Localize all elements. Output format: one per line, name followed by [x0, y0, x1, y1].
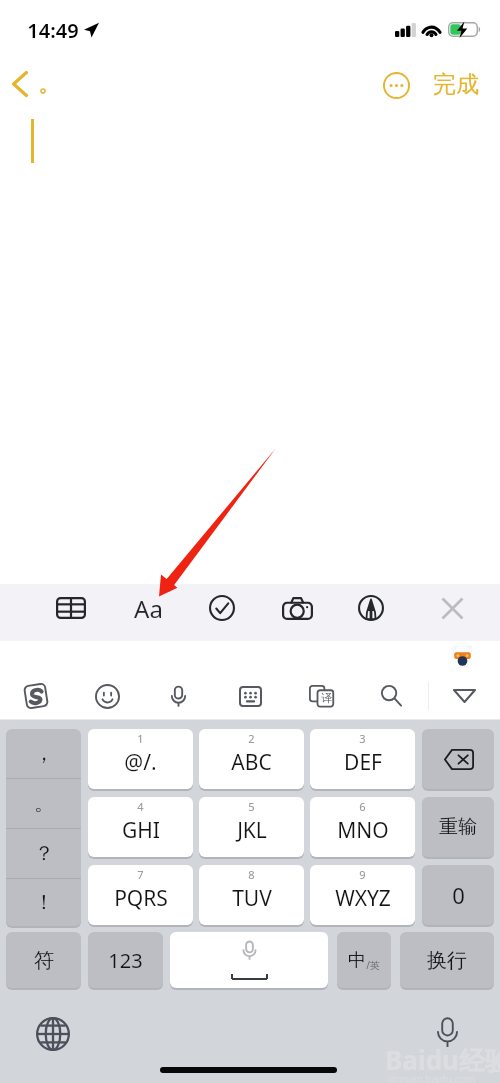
staticText: /英 [366, 958, 380, 972]
button[interactable]: Search [369, 674, 413, 718]
button[interactable]: Keyboard layout [228, 674, 272, 718]
staticText: ！ [34, 890, 54, 915]
button[interactable]: 换行 [400, 932, 494, 988]
button[interactable]: @/. [88, 729, 193, 789]
button[interactable]: ABC [199, 729, 304, 789]
button[interactable]: ， [6, 729, 81, 778]
staticText: Aa [134, 592, 163, 625]
staticText: 1 [137, 731, 144, 746]
staticText: 2 [248, 731, 255, 746]
button[interactable]: Close [428, 584, 476, 632]
button[interactable]: Emoji [85, 674, 129, 718]
staticText: PQRS [114, 884, 168, 913]
button[interactable]: 。 [6, 779, 81, 828]
staticText: @/. [124, 748, 157, 777]
button[interactable]: Camera [273, 584, 321, 632]
staticText: 8 [248, 867, 255, 882]
button[interactable]: Text format [124, 584, 172, 632]
staticText: ， [34, 741, 54, 766]
staticText: 。 [34, 791, 54, 816]
staticText: DEF [344, 748, 382, 777]
button[interactable]: DEF [310, 729, 415, 789]
button[interactable]: MNO [310, 797, 415, 857]
staticText: 译 [321, 691, 332, 705]
staticText: 完成 [433, 70, 479, 99]
staticText: 14:49 [27, 17, 79, 44]
staticText: ？ [34, 841, 54, 866]
button[interactable]: WXYZ [310, 865, 415, 925]
staticText: 符 [34, 948, 54, 973]
button[interactable]: 符 [6, 932, 81, 988]
staticText: 3 [359, 731, 366, 746]
button[interactable]: Voice input [425, 1010, 469, 1054]
staticText: 7 [137, 867, 144, 882]
button[interactable]: Table [47, 584, 95, 632]
button[interactable]: 完成 [427, 65, 485, 103]
button[interactable]: Chinese English toggle [337, 932, 391, 988]
button[interactable]: Markup [347, 584, 395, 632]
staticText: 4 [137, 799, 144, 814]
button[interactable]: ？ [6, 829, 81, 878]
staticText: GHI [122, 816, 160, 845]
staticText: TUV [232, 884, 272, 913]
staticText: WXYZ [335, 884, 391, 913]
button[interactable]: JKL [199, 797, 304, 857]
button[interactable]: ！ [6, 879, 81, 926]
button[interactable]: 123 [88, 932, 163, 988]
button[interactable]: Checklist [198, 584, 246, 632]
staticText: Baidu经验 [385, 1042, 500, 1078]
button[interactable]: Change language [31, 1012, 75, 1056]
button[interactable]: GHI [88, 797, 193, 857]
button[interactable]: TUV [199, 865, 304, 925]
staticText: 换行 [427, 948, 467, 973]
button[interactable]: Voice [156, 674, 200, 718]
button[interactable]: Back [6, 65, 54, 103]
button[interactable]: Translate [299, 674, 343, 718]
button[interactable]: More options [376, 65, 416, 105]
staticText: 5 [248, 799, 255, 814]
staticText: 9 [359, 867, 366, 882]
staticText: 重输 [439, 815, 477, 839]
button[interactable]: 0 [422, 865, 494, 925]
button[interactable]: 重输 [422, 797, 494, 857]
staticText: 123 [108, 947, 143, 974]
staticText: MNO [337, 816, 389, 845]
staticText: 0 [452, 880, 465, 910]
button[interactable]: Delete [422, 729, 494, 789]
staticText: ABC [231, 748, 272, 777]
button[interactable]: Sogou [14, 674, 58, 718]
staticText: 中 [348, 949, 366, 972]
staticText: 6 [359, 799, 366, 814]
staticText: JKL [237, 816, 267, 845]
button[interactable]: Space [170, 932, 328, 988]
button[interactable]: PQRS [88, 865, 193, 925]
button[interactable]: Hide keyboard [442, 674, 486, 718]
